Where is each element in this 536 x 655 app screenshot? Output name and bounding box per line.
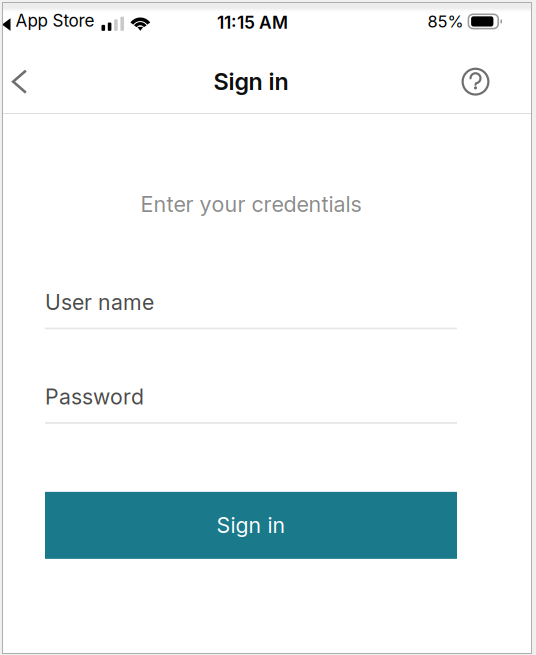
staticText: User name [45,289,154,315]
button[interactable]: Sign in [45,492,457,559]
staticText: App Store [15,10,94,31]
staticText: Password [45,384,144,410]
staticText: Sign in [216,512,285,538]
button[interactable]: Help [456,54,532,110]
staticText: Enter your credentials [140,191,361,217]
staticText: Sign in [213,67,288,96]
staticText: 11:15 AM [217,12,288,33]
button[interactable]: Back [2,54,36,110]
staticText: 85% [427,11,463,31]
